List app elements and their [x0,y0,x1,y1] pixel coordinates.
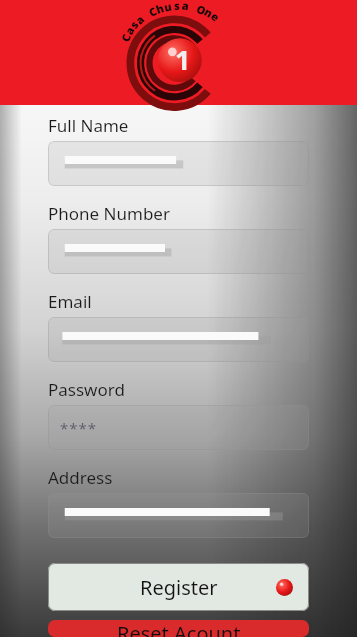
staticText: Password [48,378,125,401]
staticText: u [163,0,173,15]
staticText: Phone Number [48,202,170,225]
staticText: C [146,3,160,20]
staticText: h [154,0,166,17]
staticText: a [181,0,190,13]
staticText [141,8,152,21]
staticText: **** [60,418,98,438]
staticText: C [118,31,134,44]
button[interactable] [48,493,309,538]
staticText: O [194,1,209,18]
staticText: a [132,12,147,27]
button[interactable]: Reset Acount [48,620,309,637]
staticText: s [174,0,180,13]
staticText: Register [140,574,218,601]
staticText: e [208,8,223,24]
button[interactable]: Register [48,563,309,611]
staticText: s [126,18,142,31]
staticText: Full Name [48,114,129,137]
button[interactable] [48,229,309,274]
other: Casa Chusa One logo [119,2,239,104]
staticText: Email [48,290,92,313]
staticText: Address [48,466,113,489]
button[interactable] [48,317,309,362]
staticText: 1 [175,41,191,78]
staticText: a [121,24,138,37]
staticText: n [202,4,216,21]
button[interactable] [48,141,309,186]
staticText: Reset Acount [117,620,241,637]
button[interactable]: **** [48,405,309,450]
